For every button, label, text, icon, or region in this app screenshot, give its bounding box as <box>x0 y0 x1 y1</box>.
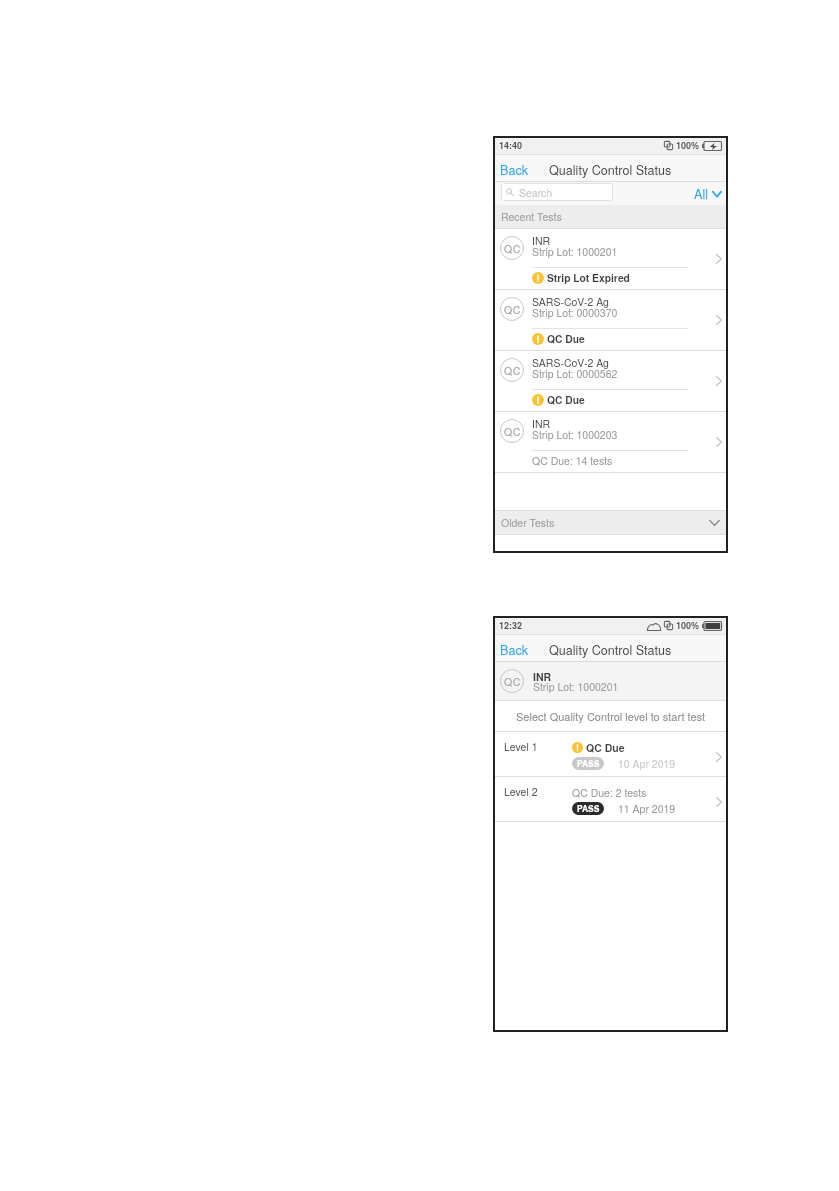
staticText: All <box>694 185 708 202</box>
staticText: QC Due <box>547 331 585 346</box>
button[interactable]: QC <box>494 229 727 289</box>
staticText: INR <box>532 233 551 248</box>
staticText: Quality Control Status <box>549 641 672 659</box>
staticText: INR <box>532 416 551 431</box>
other: Open Level 1 details <box>716 752 722 762</box>
staticText: Older Tests <box>501 515 555 530</box>
staticText: QC Due: 14 tests <box>532 453 613 468</box>
staticText: QC Due: 2 tests <box>572 785 647 800</box>
staticText: Strip Lot: 0000562 <box>532 366 618 381</box>
staticText: INR <box>533 669 552 684</box>
button[interactable]: All <box>686 182 727 205</box>
staticText: 12:32 <box>499 619 523 632</box>
button[interactable]: QC <box>494 412 727 472</box>
button[interactable]: Search tests <box>501 183 613 201</box>
staticText: Back <box>500 641 529 659</box>
staticText: PASS <box>577 758 600 770</box>
button[interactable]: QC <box>494 290 727 350</box>
staticText: Strip Lot: 1000201 <box>533 679 619 694</box>
staticText: QC <box>504 424 521 439</box>
staticText: Level 2 <box>504 784 538 799</box>
staticText: SARS-CoV-2 Ag <box>532 294 609 309</box>
staticText: 14:40 <box>499 139 523 152</box>
staticText: 11 Apr 2019 <box>618 801 676 816</box>
staticText: QC <box>504 674 521 689</box>
button[interactable]: Level 1 <box>494 732 727 776</box>
staticText: 100% <box>676 139 700 152</box>
staticText: QC Due <box>586 740 625 755</box>
other: Open SARS-CoV-2 Ag details <box>716 315 722 325</box>
staticText: Recent Tests <box>501 209 562 224</box>
button[interactable]: Back <box>494 155 536 181</box>
other: Open INR details <box>716 437 722 447</box>
staticText: SARS-CoV-2 Ag <box>532 355 609 370</box>
staticText: Strip Lot: 1000203 <box>532 427 618 442</box>
button[interactable]: Level 2 <box>494 777 727 821</box>
staticText: Back <box>500 161 529 179</box>
staticText: Select Quality Control level to start te… <box>516 708 706 724</box>
staticText: QC <box>504 302 521 317</box>
button[interactable]: Older Tests <box>494 511 727 534</box>
staticText: Quality Control Status <box>549 161 672 179</box>
staticText: Strip Lot: 1000201 <box>532 244 618 259</box>
staticText: QC <box>504 241 521 256</box>
other: Open INR details <box>716 254 722 264</box>
staticText: 100% <box>676 619 700 632</box>
staticText: Search <box>519 185 553 200</box>
staticText: PASS <box>577 803 600 815</box>
staticText: QC <box>504 363 521 378</box>
button[interactable]: Back <box>494 635 536 661</box>
staticText: Strip Lot: 0000370 <box>532 305 618 320</box>
staticText: Strip Lot Expired <box>547 270 630 285</box>
staticText: QC Due <box>547 392 585 407</box>
button[interactable]: QC <box>494 351 727 411</box>
staticText: 10 Apr 2019 <box>618 756 676 771</box>
staticText: Level 1 <box>504 739 538 754</box>
other: Open Level 2 details <box>716 797 722 807</box>
other: Open SARS-CoV-2 Ag details <box>716 376 722 386</box>
